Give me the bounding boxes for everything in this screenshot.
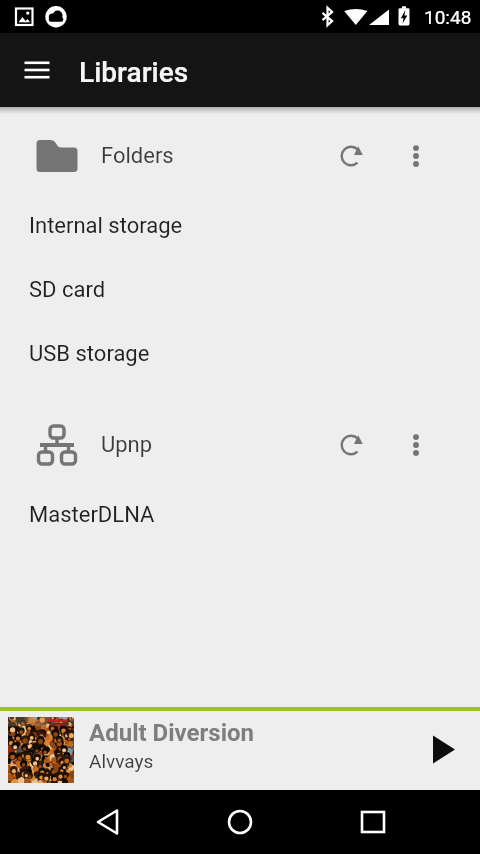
staticText: Libraries	[79, 56, 189, 89]
staticText: Internal storage	[29, 213, 183, 239]
staticText: USB storage	[29, 341, 150, 367]
button[interactable]: Recents	[343, 792, 403, 852]
button[interactable]: Home	[210, 792, 270, 852]
button[interactable]: More options	[392, 132, 440, 180]
button[interactable]: Back	[78, 792, 138, 852]
button[interactable]: SD card	[0, 258, 480, 322]
button[interactable]: Refresh	[327, 132, 375, 180]
button[interactable]: Refresh	[327, 421, 375, 469]
staticText: MasterDLNA	[29, 502, 155, 528]
staticText: Upnp	[101, 432, 153, 458]
staticText: Folders	[101, 143, 174, 169]
button[interactable]: USB storage	[0, 322, 480, 386]
button[interactable]: MasterDLNA	[0, 483, 480, 547]
button[interactable]: Play	[418, 725, 470, 777]
button[interactable]: More options	[392, 421, 440, 469]
button[interactable]: Internal storage	[0, 194, 480, 258]
staticText: Alvvays	[89, 750, 154, 772]
staticText: 10:48	[424, 6, 472, 28]
staticText: Adult Diversion	[89, 719, 255, 747]
button[interactable]: Adult Diversion	[0, 711, 480, 790]
staticText: SD card	[29, 277, 106, 303]
button[interactable]: Open navigation drawer	[13, 46, 61, 94]
